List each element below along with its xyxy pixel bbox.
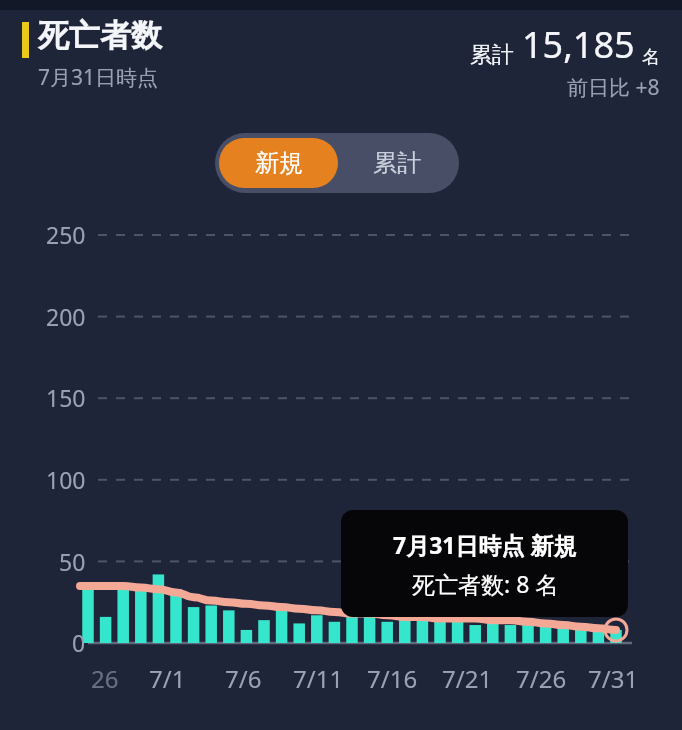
staticText: 新規: [255, 148, 303, 178]
staticText: 7/31: [588, 662, 639, 695]
staticText: 7月31日時点 新規: [393, 529, 577, 560]
staticText: 7/6: [225, 662, 262, 695]
staticText: 250: [46, 219, 86, 250]
staticText: 200: [46, 301, 86, 332]
staticText: 死亡者数: [38, 16, 162, 55]
staticText: 7/1: [149, 662, 186, 695]
staticText: 0: [72, 627, 86, 658]
staticText: 7/11: [293, 662, 344, 695]
staticText: 150: [46, 382, 86, 413]
staticText: 100: [46, 464, 86, 495]
staticText: 名: [642, 46, 660, 69]
staticText: 前日比 +8: [567, 73, 660, 102]
button[interactable]: 新規: [219, 138, 338, 188]
staticText: 7月31日時点: [38, 63, 159, 92]
button[interactable]: 累計: [338, 138, 455, 188]
button[interactable]: 7月31日時点 新規: [341, 510, 628, 617]
staticText: 死亡者数: 8 名: [412, 568, 559, 599]
staticText: 7/26: [516, 662, 567, 695]
staticText: 累計: [373, 148, 421, 178]
staticText: 7/21: [442, 662, 493, 695]
staticText: 50: [59, 546, 86, 577]
staticText: 26: [91, 662, 119, 695]
staticText: 15,185: [522, 20, 635, 69]
staticText: 7/16: [367, 662, 418, 695]
staticText: 累計: [470, 41, 514, 69]
